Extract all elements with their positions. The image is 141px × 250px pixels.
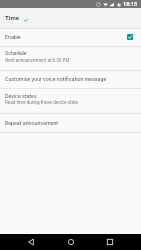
staticText: Schedule <box>5 50 27 56</box>
button[interactable]: Customise your voice notification messag… <box>0 71 141 88</box>
button[interactable]: Enable <box>127 34 133 40</box>
staticText: Customise your voice notification messag… <box>5 76 107 82</box>
staticText: Next announcement at 6:30 PM <box>5 58 70 63</box>
button[interactable]: Enable <box>0 29 141 46</box>
button[interactable]: Home <box>63 234 79 250</box>
button[interactable]: Recents <box>102 234 118 250</box>
staticText: Time <box>5 14 19 21</box>
staticText: Repeat announcement <box>5 120 59 126</box>
staticText: Read time during these device state <box>5 100 78 105</box>
button[interactable]: Device states <box>0 89 141 113</box>
staticText: Device states <box>5 93 37 99</box>
staticText: Enable <box>5 34 21 40</box>
staticText: 18:15 <box>123 1 138 8</box>
button[interactable]: Repeat announcement <box>0 114 141 132</box>
button[interactable]: Schedule <box>0 47 141 70</box>
button[interactable]: Back <box>23 234 39 250</box>
